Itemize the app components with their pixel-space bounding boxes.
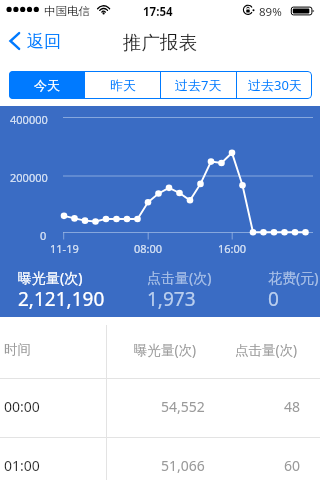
staticText: 点击量(次) <box>235 341 298 359</box>
staticText: 16:00 <box>218 241 247 256</box>
staticText: 花费(元) <box>268 268 319 287</box>
button[interactable]: 00:00 <box>0 379 320 438</box>
staticText: 返回 <box>27 31 61 52</box>
button[interactable]: 今天 <box>9 71 84 99</box>
button[interactable]: 返回 <box>4 19 66 63</box>
button[interactable]: 昨天 <box>85 71 160 99</box>
staticText: 推广报表 <box>123 31 197 54</box>
staticText: 1,973 <box>147 286 196 312</box>
staticText: 400000 <box>10 112 48 127</box>
staticText: 点击量(次) <box>147 268 212 287</box>
staticText: 08:00 <box>134 241 163 256</box>
staticText: 200000 <box>10 170 48 185</box>
staticText: 89% <box>259 4 282 20</box>
staticText: 中国电信 <box>44 4 90 18</box>
staticText: 11-19 <box>50 241 79 256</box>
staticText: 今天 <box>34 77 60 93</box>
staticText: 曝光量(次) <box>134 341 197 359</box>
button[interactable]: 过去30天 <box>237 71 312 99</box>
staticText: 17:54 <box>143 4 173 20</box>
staticText: 0 <box>40 228 47 243</box>
staticText: 昨天 <box>110 77 136 93</box>
staticText: 2,121,190 <box>18 286 105 312</box>
staticText: 51,066 <box>161 456 205 475</box>
button[interactable]: 过去7天 <box>161 71 236 99</box>
staticText: 过去7天 <box>175 76 222 94</box>
staticText: 0 <box>268 286 279 312</box>
staticText: 00:00 <box>4 397 40 416</box>
staticText: 时间 <box>4 341 31 358</box>
staticText: 54,552 <box>161 397 205 416</box>
staticText: 过去30天 <box>248 76 302 94</box>
staticText: 48 <box>284 397 301 416</box>
button[interactable]: 01:00 <box>0 438 320 480</box>
staticText: 01:00 <box>4 456 40 475</box>
staticText: 60 <box>284 456 301 475</box>
staticText: 曝光量(次) <box>18 268 83 287</box>
